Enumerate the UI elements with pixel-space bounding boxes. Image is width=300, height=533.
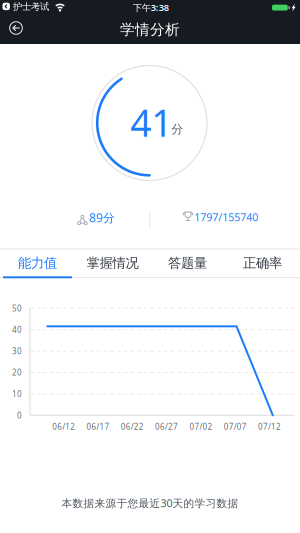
- staticText: 41: [130, 97, 172, 147]
- staticText: 06/27: [155, 421, 178, 432]
- button[interactable]: 正确率: [225, 249, 300, 277]
- button[interactable]: 掌握情况: [75, 249, 150, 277]
- staticText: 89分: [89, 209, 115, 225]
- staticText: 07/07: [224, 421, 247, 432]
- button[interactable]: 答题量: [150, 249, 225, 277]
- staticText: 正确率: [243, 255, 282, 271]
- staticText: 07/12: [258, 421, 281, 432]
- staticText: 06/12: [52, 421, 75, 432]
- staticText: 0: [17, 410, 22, 421]
- staticText: 50: [12, 303, 22, 314]
- staticText: 1797/155740: [194, 210, 258, 224]
- button[interactable]: Back: [4, 16, 28, 40]
- staticText: 07/02: [189, 421, 212, 432]
- staticText: 学情分析: [120, 20, 180, 38]
- staticText: 06/22: [121, 421, 144, 432]
- staticText: 护士考试: [13, 1, 49, 12]
- button[interactable]: 能力值: [0, 249, 75, 277]
- staticText: 30: [12, 346, 22, 356]
- staticText: 10: [12, 389, 22, 399]
- staticText: 掌握情况: [86, 255, 138, 271]
- staticText: 本数据来源于您最近30天的学习数据: [61, 496, 238, 510]
- staticText: 20: [12, 367, 22, 378]
- staticText: 下午3:38: [133, 1, 169, 14]
- staticText: 40: [12, 324, 22, 335]
- staticText: 答题量: [168, 255, 207, 271]
- staticText: 06/17: [87, 421, 110, 432]
- staticText: 分: [171, 122, 183, 137]
- staticText: 能力值: [18, 255, 57, 271]
